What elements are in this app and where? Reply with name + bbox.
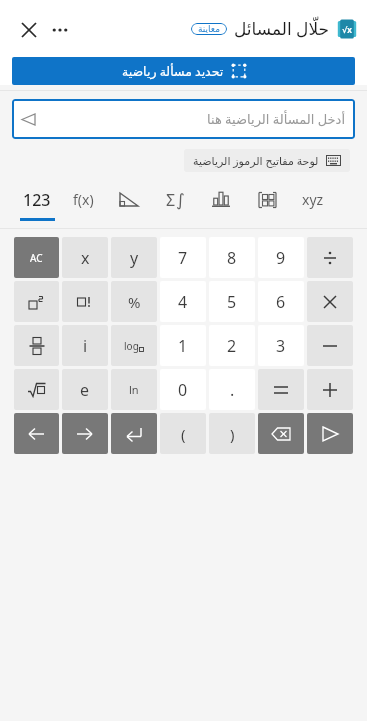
staticText: i [83, 335, 88, 357]
button[interactable] [244, 181, 290, 228]
staticText: 5 [227, 291, 237, 313]
button[interactable]: معاينة [191, 23, 227, 35]
button[interactable]: Square [14, 281, 59, 322]
button[interactable]: Logarithm [111, 325, 157, 366]
staticText: أدخل المسألة الرياضية هنا [207, 110, 345, 128]
button[interactable]: Square root [14, 369, 59, 410]
button[interactable]: Plus [307, 369, 353, 410]
staticText: log [124, 339, 139, 353]
button[interactable]: Multiply [307, 281, 353, 322]
button[interactable]: ) [209, 413, 255, 454]
staticText: تحديد مسألة رياضية [122, 63, 224, 80]
button[interactable]: Backspace [258, 413, 304, 454]
staticText: . [230, 379, 235, 401]
staticText: √x [342, 24, 352, 35]
button[interactable]: 6 [258, 281, 304, 322]
button[interactable]: ln [111, 369, 157, 410]
button[interactable]: Fraction [14, 325, 59, 366]
staticText: 1 [178, 335, 188, 357]
button[interactable]: 9 [258, 237, 304, 278]
button[interactable]: Close [14, 15, 44, 45]
staticText: ln [129, 382, 139, 397]
staticText: معاينة [198, 24, 220, 34]
staticText: Σ [166, 189, 176, 211]
button[interactable]: . [209, 369, 255, 410]
button[interactable]: AC [14, 237, 59, 278]
staticText: AC [30, 251, 43, 265]
button[interactable]: 4 [160, 281, 206, 322]
button[interactable]: i [62, 325, 108, 366]
staticText: ( [181, 424, 186, 444]
button[interactable]: لوحة مفاتيح الرموز الرياضية [184, 149, 350, 172]
button[interactable]: Submit [307, 413, 353, 454]
staticText: 6 [276, 291, 286, 313]
button[interactable]: 5 [209, 281, 255, 322]
staticText: 0 [178, 379, 188, 401]
staticText: 2 [227, 335, 237, 357]
button[interactable]: 3 [258, 325, 304, 366]
button[interactable]: 1 [160, 325, 206, 366]
staticText: 4 [178, 291, 188, 313]
staticText: 123 [23, 189, 51, 211]
button[interactable]: Σ [152, 181, 198, 228]
button[interactable]: Divide [307, 237, 353, 278]
button[interactable]: y [111, 237, 157, 278]
button[interactable]: 7 [160, 237, 206, 278]
button[interactable] [198, 181, 244, 228]
staticText: 8 [227, 247, 237, 269]
button[interactable]: 2 [209, 325, 255, 366]
staticText: f(x) [73, 190, 94, 209]
button[interactable]: % [111, 281, 157, 322]
button[interactable]: 0 [160, 369, 206, 410]
staticText: ∫ [176, 190, 185, 210]
button[interactable]: 8 [209, 237, 255, 278]
staticText: حلّال المسائل [234, 17, 330, 40]
staticText: 7 [178, 247, 188, 269]
button[interactable]: Minus [307, 325, 353, 366]
staticText: y [130, 247, 139, 269]
button[interactable]: ( [160, 413, 206, 454]
button[interactable]: e [62, 369, 108, 410]
button[interactable]: أدخل المسألة الرياضية هنا [12, 99, 355, 139]
button[interactable]: Right [62, 413, 108, 454]
staticText: لوحة مفاتيح الرموز الرياضية [193, 153, 319, 168]
staticText: % [128, 292, 141, 312]
staticText: xyz [302, 190, 324, 209]
button[interactable]: تحديد مسألة رياضية [12, 57, 355, 85]
button[interactable] [106, 181, 152, 228]
button[interactable]: xyz [290, 181, 336, 228]
staticText: e [80, 379, 90, 401]
button[interactable]: Enter [111, 413, 157, 454]
button[interactable]: Equals [258, 369, 304, 410]
button[interactable]: Factorial [62, 281, 108, 322]
button[interactable]: f(x) [60, 181, 106, 228]
button[interactable]: 123 [14, 181, 60, 228]
staticText: x [81, 247, 90, 269]
button[interactable]: Left [14, 413, 59, 454]
button[interactable]: More options [45, 15, 75, 45]
staticText: 9 [276, 247, 286, 269]
button[interactable]: x [62, 237, 108, 278]
staticText: ) [230, 424, 235, 444]
staticText: 3 [276, 335, 286, 357]
